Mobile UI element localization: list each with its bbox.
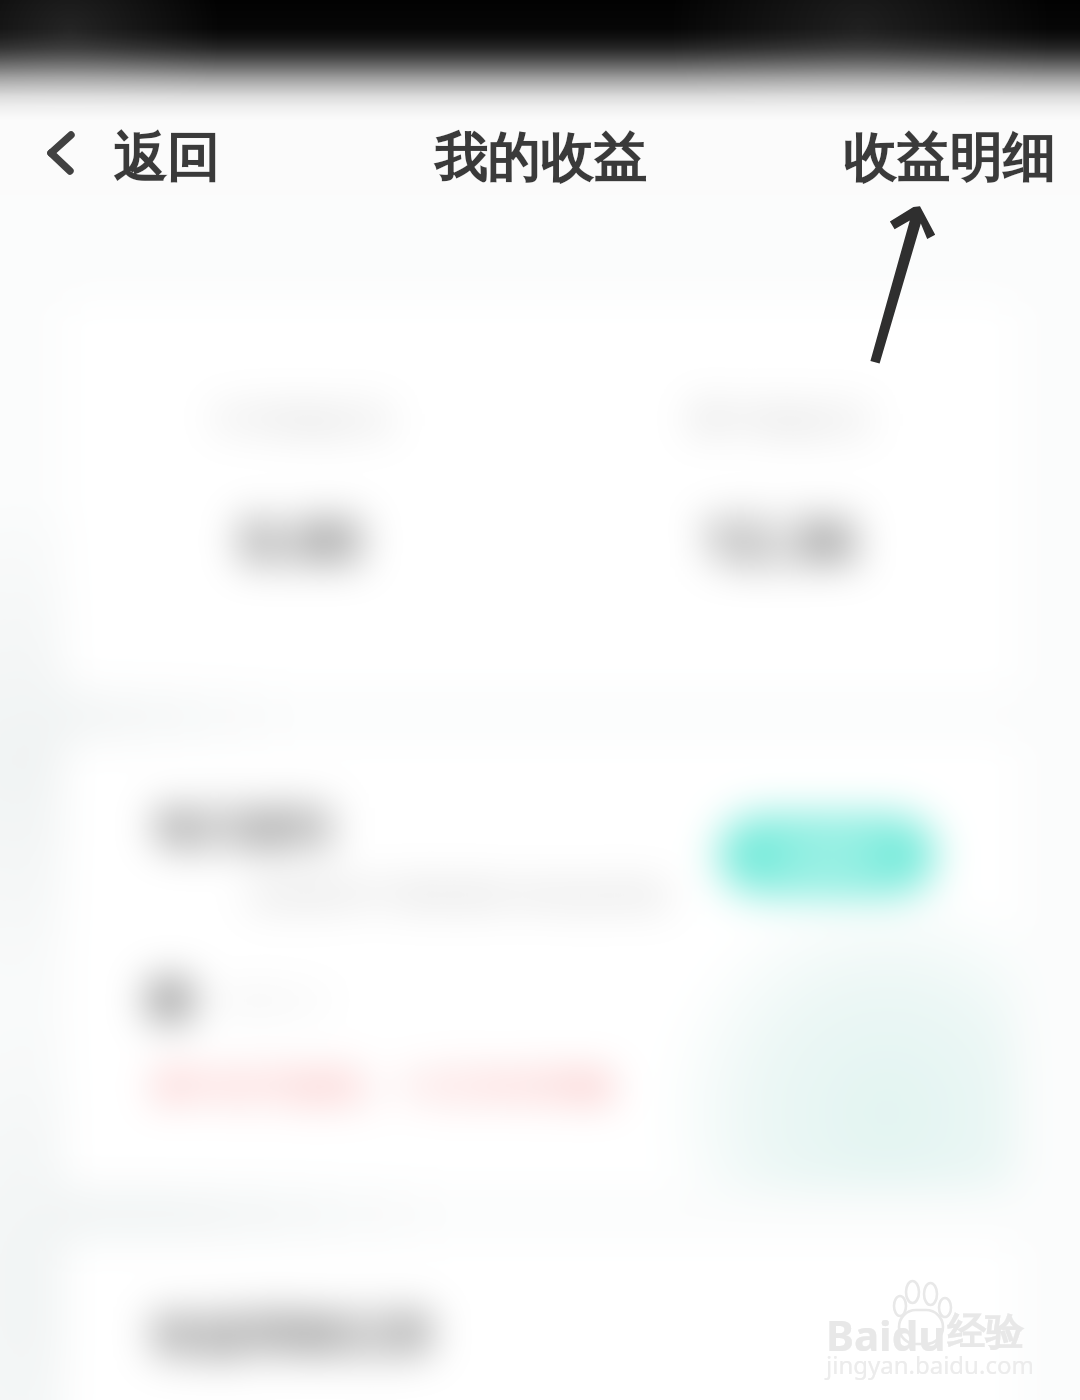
staticText: 0.00 — [241, 498, 361, 580]
staticText: 收益明细记录 — [152, 1306, 434, 1365]
staticText: 我的收益 — [434, 125, 646, 192]
button[interactable]: 返回 — [0, 121, 245, 195]
staticText: 经验 — [947, 1308, 1023, 1356]
staticText: 返回 — [113, 125, 219, 192]
button[interactable]: 今日收益(元) — [62, 300, 540, 692]
button[interactable]: 去签到 — [718, 815, 936, 895]
staticText: 每日签到 — [154, 802, 330, 857]
button[interactable]: 收益明细 — [843, 121, 1055, 195]
staticText: 去签到 — [779, 835, 875, 875]
staticText: 满10元可提现，1-3工作日到账 — [152, 1062, 615, 1108]
button[interactable]: 累计收益(元) — [540, 300, 1018, 692]
staticText: jingyan.baidu.com — [826, 1348, 1034, 1381]
staticText: Baidu — [826, 1306, 946, 1363]
button[interactable]: 收益明细记录 — [62, 1238, 1018, 1400]
staticText: 收益明细 — [843, 125, 1055, 192]
staticText: 12.36 — [702, 498, 857, 580]
